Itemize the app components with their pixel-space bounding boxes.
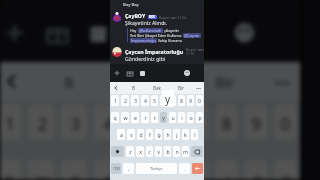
button[interactable]: y [156, 159, 179, 180]
button[interactable]: 7 [169, 95, 176, 106]
staticText: y [162, 166, 172, 180]
staticText: Türkçe [150, 166, 163, 171]
button[interactable]: a [117, 129, 125, 140]
button[interactable]: u [169, 112, 176, 123]
button[interactable]: t [151, 112, 158, 123]
staticText: r [144, 114, 147, 121]
button[interactable]: s [127, 129, 135, 140]
button[interactable]: k [182, 129, 189, 140]
button[interactable]: 2 [121, 95, 129, 106]
button[interactable]: o [244, 159, 267, 180]
button[interactable]: More options [264, 62, 300, 101]
button[interactable]: v [155, 146, 162, 157]
button[interactable]: More options [193, 82, 204, 94]
button[interactable]: . [179, 163, 190, 174]
button[interactable]: n [173, 146, 180, 157]
staticText: w [123, 114, 128, 121]
button[interactable]: Previous suggestions [110, 82, 121, 94]
button[interactable]: Bak [145, 82, 169, 94]
button[interactable]: j [173, 129, 180, 140]
staticText: Gönderdiniz gibi [125, 55, 166, 62]
button[interactable]: Shift [111, 146, 124, 157]
button[interactable]: m [182, 146, 189, 157]
button[interactable]: u [185, 159, 208, 180]
staticText: . [184, 165, 186, 172]
button[interactable]: p [196, 112, 203, 123]
button[interactable]: b [164, 146, 171, 157]
button[interactable]: Bak [107, 62, 185, 101]
button[interactable]: 6 [160, 95, 167, 106]
button[interactable]: Türkçe [136, 163, 177, 174]
staticText: 2 [124, 97, 127, 104]
button[interactable]: B [28, 62, 107, 101]
button[interactable]: Add attachment [112, 68, 122, 78]
button[interactable]: Bir [169, 82, 193, 94]
staticText: 2 [38, 111, 48, 134]
button[interactable]: 3 [131, 95, 139, 106]
button[interactable]: y [160, 112, 167, 123]
button[interactable]: w [28, 159, 54, 180]
staticText: h [166, 131, 170, 138]
button[interactable]: x [136, 146, 144, 157]
staticText: Bak [133, 72, 162, 91]
button[interactable]: l [191, 129, 198, 140]
button[interactable]: 7 [185, 104, 208, 140]
button[interactable]: Enter [192, 163, 203, 174]
button[interactable]: 2 [28, 104, 54, 140]
button[interactable]: t [126, 159, 149, 180]
button[interactable]: Stickers [137, 68, 147, 78]
button[interactable]: 1 [111, 95, 119, 106]
button[interactable]: r [93, 159, 120, 180]
button[interactable]: e [61, 159, 87, 180]
button[interactable]: q [111, 112, 119, 123]
button[interactable]: 8 [178, 95, 185, 106]
staticText: 7 [192, 111, 202, 134]
button[interactable]: Backspace [191, 146, 203, 157]
button[interactable]: h [164, 129, 171, 140]
staticText: 4 [103, 111, 113, 134]
button[interactable]: 6 [156, 104, 179, 140]
button[interactable]: , [123, 163, 134, 174]
button[interactable]: 0 [196, 95, 203, 106]
button[interactable]: r [141, 112, 149, 123]
button[interactable]: 4 [141, 95, 149, 106]
staticText: 0 [198, 97, 201, 104]
button[interactable]: Previous suggestions [0, 62, 28, 101]
button[interactable]: 5 [151, 95, 158, 106]
button[interactable]: 4 [93, 104, 120, 140]
button[interactable]: 1 [0, 104, 21, 140]
button[interactable]: Add attachment [0, 16, 31, 49]
button[interactable]: Bir [185, 62, 264, 101]
button[interactable]: Emoji [182, 68, 192, 78]
button[interactable]: ı [215, 159, 238, 180]
staticText: 6 [162, 111, 172, 134]
button[interactable]: Send a gift [125, 68, 135, 78]
staticText: Bir [178, 85, 185, 91]
button[interactable]: 9 [244, 104, 267, 140]
button[interactable]: Emoji [228, 16, 261, 49]
button[interactable]: w [121, 112, 129, 123]
button[interactable]: 8 [215, 104, 238, 140]
button[interactable]: q [0, 159, 21, 180]
button[interactable]: 3 [61, 104, 87, 140]
button[interactable]: 5 [126, 104, 149, 140]
button[interactable]: ı [178, 112, 185, 123]
button[interactable]: g [155, 129, 162, 140]
button[interactable]: e [131, 112, 139, 123]
staticText: şikayetin [163, 28, 179, 33]
button[interactable]: c [146, 146, 153, 157]
button[interactable]: Symbols [111, 163, 121, 174]
button[interactable]: Send a gift [41, 16, 74, 49]
button[interactable]: p [274, 159, 297, 180]
button[interactable]: 9 [187, 95, 194, 106]
button[interactable]: B [121, 82, 145, 94]
staticText: 9 [251, 111, 261, 134]
button[interactable]: 0 [274, 104, 297, 140]
button[interactable]: Stickers [80, 16, 113, 49]
button[interactable]: o [187, 112, 194, 123]
staticText: @kullaniciadi [139, 28, 162, 33]
button[interactable]: z [126, 146, 134, 157]
button[interactable]: f [146, 129, 153, 140]
staticText: B [132, 85, 135, 91]
button[interactable]: d [137, 129, 144, 140]
